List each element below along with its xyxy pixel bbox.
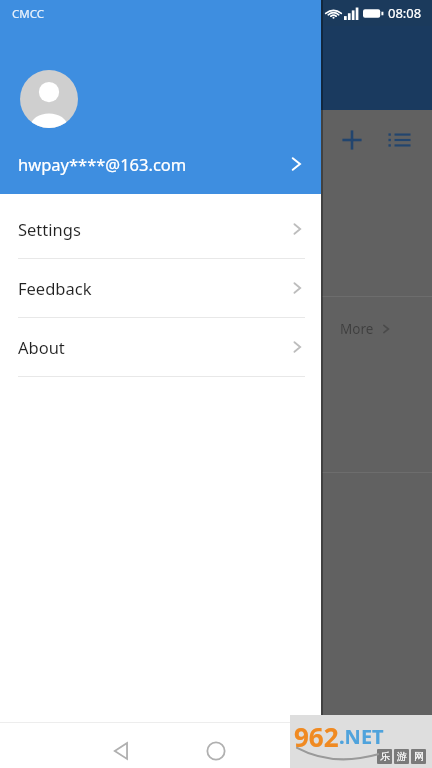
staticText: 08:08 (388, 4, 422, 22)
button[interactable]: Settings (0, 200, 321, 258)
staticText: About (18, 336, 65, 358)
button[interactable]: Home (198, 733, 234, 768)
button[interactable]: About (0, 318, 321, 376)
staticText: 游 (397, 750, 407, 763)
button[interactable]: List (383, 124, 415, 156)
staticText: 网 (414, 750, 424, 763)
staticText: More (340, 320, 374, 338)
staticText: Settings (18, 218, 81, 240)
staticText: 962 (294, 719, 339, 754)
button[interactable]: More (340, 315, 392, 343)
button[interactable]: Back (104, 733, 140, 768)
button[interactable]: Add (336, 124, 368, 156)
staticText: 乐 (380, 750, 390, 763)
staticText: Feedback (18, 277, 92, 299)
staticText: CMCC (12, 6, 45, 22)
button[interactable]: hwpay****@163.com (0, 142, 321, 186)
staticText: hwpay****@163.com (18, 153, 187, 175)
staticText: .NET (339, 723, 384, 750)
button[interactable]: Feedback (0, 259, 321, 317)
